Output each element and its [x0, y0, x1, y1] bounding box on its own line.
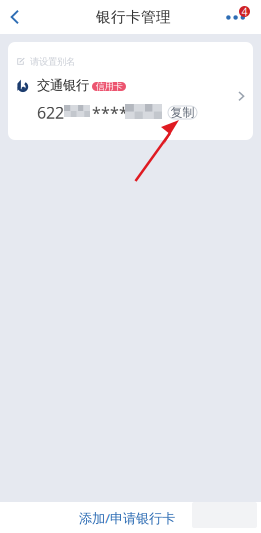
- button[interactable]: 返回: [0, 0, 30, 34]
- button[interactable]: 添加/申请银行卡: [72, 508, 182, 528]
- staticText: ****: [92, 102, 128, 123]
- staticText: 银行卡管理: [96, 8, 171, 26]
- button[interactable]: 复制: [168, 106, 197, 119]
- staticText: 622: [37, 102, 64, 123]
- staticText: 请设置别名: [30, 56, 75, 67]
- staticText: 添加/申请银行卡: [79, 509, 175, 527]
- button[interactable]: 请设置别名: [8, 42, 253, 140]
- staticText: 交通银行: [37, 77, 89, 93]
- staticText: 4: [241, 4, 247, 19]
- button[interactable]: 更多: [222, 1, 256, 35]
- staticText: 信用卡: [95, 81, 122, 92]
- staticText: 复制: [170, 105, 194, 120]
